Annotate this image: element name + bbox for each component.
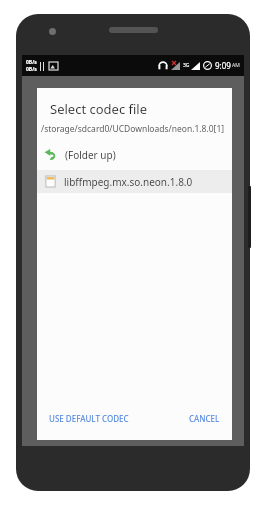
staticText: 0B/s <box>26 59 37 66</box>
button[interactable]: libffmpeg.mx.so.neon.1.8.0 <box>37 170 232 193</box>
staticText: 3G <box>183 62 190 69</box>
staticText: 9:09 <box>215 60 231 71</box>
staticText: CANCEL <box>189 413 220 424</box>
staticText: (Folder up) <box>65 148 116 162</box>
staticText: /storage/sdcard0/UCDownloads/neon.1.8.0[… <box>41 123 225 135</box>
staticText: 0B/s <box>26 66 37 73</box>
button[interactable]: USE DEFAULT CODEC <box>43 407 135 430</box>
staticText: libffmpeg.mx.so.neon.1.8.0 <box>64 175 193 189</box>
button[interactable]: CANCEL <box>183 407 226 430</box>
button[interactable]: (Folder up) <box>37 144 232 166</box>
staticText: Select codec file <box>50 100 148 118</box>
staticText: AM <box>232 62 240 69</box>
staticText: USE DEFAULT CODEC <box>49 413 129 424</box>
